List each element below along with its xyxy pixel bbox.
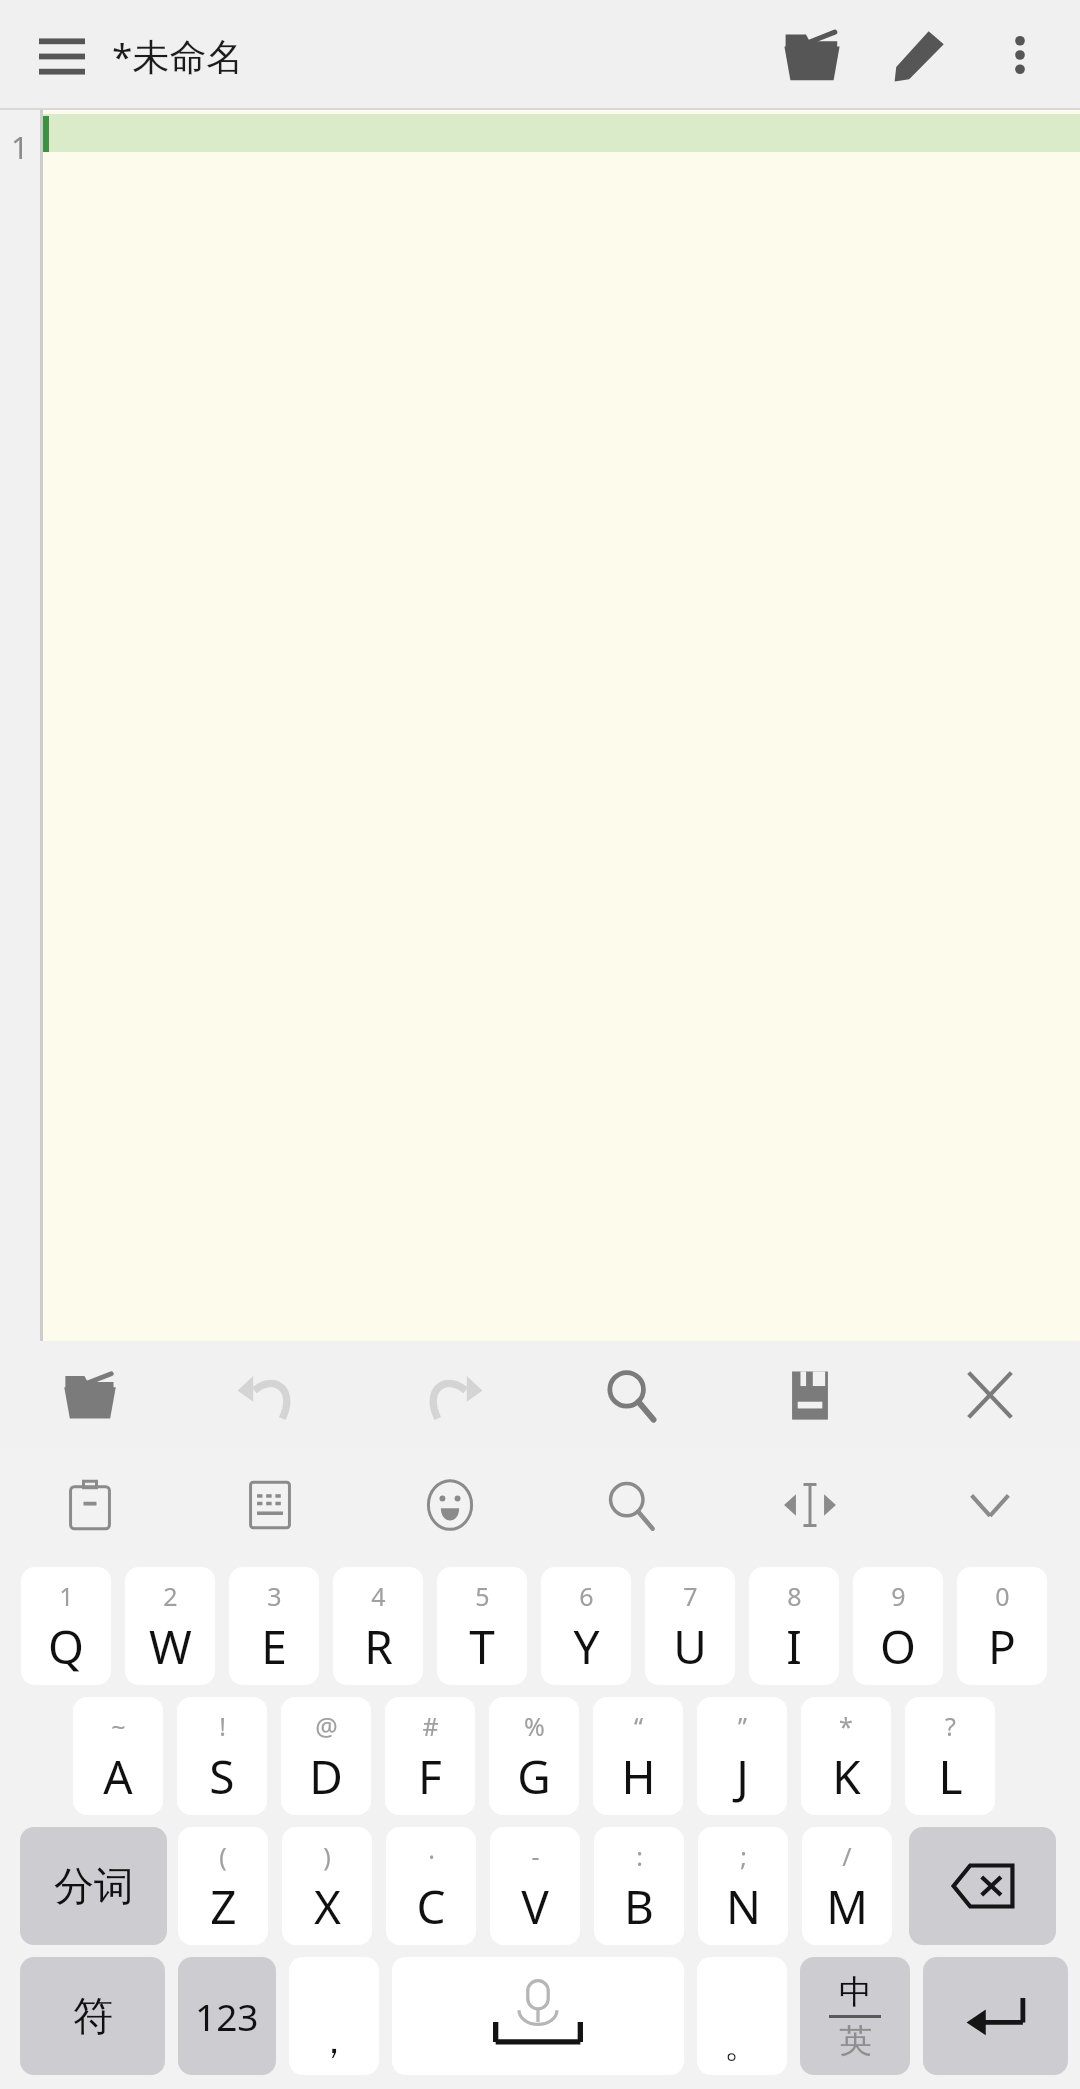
staticText: 6 [579,1579,594,1613]
staticText: S [209,1745,235,1808]
button[interactable]: Emoji [360,1449,540,1561]
button[interactable]: % [489,1697,579,1815]
button[interactable]: Word segmentation [20,1827,167,1945]
button[interactable]: ” [697,1697,787,1815]
button[interactable]: Menu [20,13,104,97]
staticText: 9 [891,1579,906,1613]
staticText: *未命名 [112,30,244,81]
button[interactable]: @ [281,1697,371,1815]
staticText: / [842,1839,852,1873]
staticText: : [636,1839,643,1873]
button[interactable]: 1 [21,1567,111,1685]
staticText: * [839,1709,853,1743]
button[interactable]: 3 [229,1567,319,1685]
button[interactable]: 5 [437,1567,527,1685]
staticText: 分词 [54,1861,134,1911]
staticText: T [469,1615,495,1678]
button[interactable]: Open folder [756,0,868,110]
staticText: ? [945,1709,956,1743]
button[interactable]: “ [593,1697,683,1815]
staticText: K [832,1745,861,1808]
button[interactable]: Hide keyboard [900,1449,1080,1561]
staticText: F [418,1745,442,1808]
button[interactable]: Enter [923,1957,1068,2075]
staticText: I [786,1615,802,1678]
button[interactable]: Save [720,1341,900,1449]
staticText: 2 [163,1579,178,1613]
button[interactable]: ? [905,1697,995,1815]
staticText: 1 [59,1579,74,1613]
staticText: V [521,1875,549,1938]
button[interactable]: 9 [853,1567,943,1685]
button[interactable]: * [801,1697,891,1815]
button[interactable]: Search [540,1449,720,1561]
button[interactable]: Period [697,1957,787,2075]
staticText: X [314,1875,341,1938]
staticText: ~ [111,1709,126,1743]
button[interactable]: More options [972,7,1068,103]
staticText: 中 [839,1971,872,2013]
staticText: Z [210,1875,237,1938]
button[interactable]: · [386,1827,476,1945]
staticText: G [517,1745,551,1808]
staticText: H [621,1745,656,1808]
staticText: O [880,1615,916,1678]
staticText: W [149,1615,192,1678]
staticText: @ [315,1709,338,1743]
button[interactable]: Chinese English toggle [800,1957,910,2075]
staticText: Q [48,1615,84,1678]
staticText: ” [738,1709,747,1743]
staticText: 英 [839,2020,872,2062]
button[interactable]: Undo [180,1341,360,1449]
button[interactable]: 2 [125,1567,215,1685]
button[interactable]: Edit [868,3,972,107]
staticText: ( [219,1839,227,1873]
button[interactable]: Redo [360,1341,540,1449]
button[interactable]: ; [698,1827,788,1945]
button[interactable]: Backspace [909,1827,1056,1945]
button[interactable] [43,110,1080,1341]
button[interactable]: Numbers [178,1957,276,2075]
button[interactable]: - [490,1827,580,1945]
button[interactable]: 4 [333,1567,423,1685]
button[interactable]: Clipboard [0,1449,180,1561]
button[interactable]: Comma [289,1957,379,2075]
staticText: “ [634,1709,643,1743]
button[interactable]: Search [540,1341,720,1449]
staticText: B [624,1875,654,1938]
staticText: N [726,1875,761,1938]
staticText: ! [219,1709,226,1743]
button[interactable]: : [594,1827,684,1945]
staticText: 4 [371,1579,386,1613]
button[interactable]: ! [177,1697,267,1815]
staticText: 7 [683,1579,698,1613]
button[interactable]: Move cursor [720,1449,900,1561]
button[interactable]: Keyboard layout [180,1449,360,1561]
button[interactable]: ( [178,1827,268,1945]
button[interactable]: 0 [957,1567,1047,1685]
staticText: R [364,1615,393,1678]
button[interactable]: ) [282,1827,372,1945]
staticText: D [309,1745,343,1808]
button[interactable]: 8 [749,1567,839,1685]
button[interactable]: Space [392,1957,684,2075]
staticText: L [938,1745,963,1808]
staticText: ; [740,1839,747,1873]
staticText: J [736,1745,749,1808]
button[interactable]: Open file [0,1341,180,1449]
button[interactable]: Close [900,1341,1080,1449]
button[interactable]: ~ [73,1697,163,1815]
button[interactable]: 7 [645,1567,735,1685]
staticText: 5 [475,1579,490,1613]
staticText: · [428,1839,435,1873]
staticText: P [988,1615,1016,1678]
staticText: ) [323,1839,331,1873]
staticText: A [103,1745,133,1808]
button[interactable]: # [385,1697,475,1815]
staticText: 123 [195,1991,259,2041]
button[interactable]: Symbols [20,1957,165,2075]
staticText: 符 [73,1991,113,2041]
button[interactable]: / [802,1827,892,1945]
button[interactable]: 6 [541,1567,631,1685]
staticText: Y [573,1615,600,1678]
